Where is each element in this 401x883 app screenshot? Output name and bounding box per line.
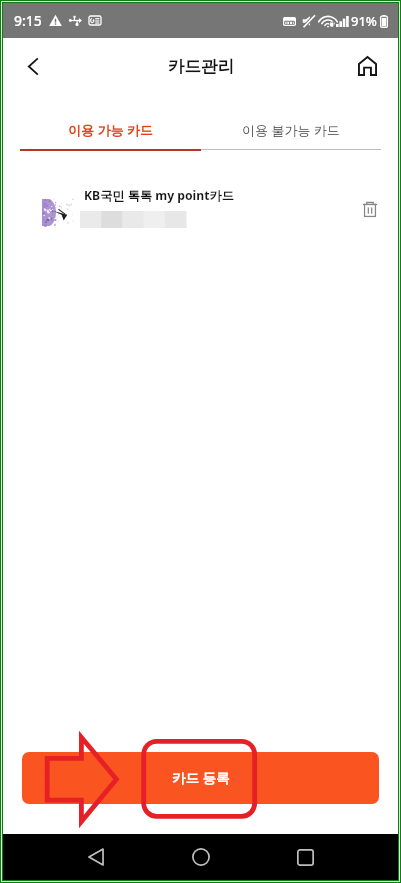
staticText: 9:15	[14, 11, 42, 30]
button[interactable]: Home	[345, 44, 389, 88]
staticText: KB국민 톡톡 my point카드	[84, 187, 234, 204]
button[interactable]: Back	[74, 835, 118, 879]
staticText: 91%	[351, 12, 377, 30]
button[interactable]: 카드 등록	[22, 752, 379, 804]
staticText: 이용 불가능 카드	[242, 121, 340, 139]
button[interactable]: Recent apps	[283, 835, 327, 879]
button[interactable]: KB국민 톡톡 my point카드	[3, 187, 398, 231]
button[interactable]: Delete card	[350, 189, 390, 229]
button[interactable]: 이용 가능 카드	[20, 103, 200, 156]
staticText: 이용 가능 카드	[68, 121, 153, 139]
staticText: 카드 등록	[172, 769, 230, 787]
button[interactable]: Home	[179, 835, 223, 879]
staticText: 카드관리	[168, 56, 234, 77]
button[interactable]: 이용 불가능 카드	[200, 103, 381, 156]
button[interactable]: Back	[11, 44, 55, 88]
